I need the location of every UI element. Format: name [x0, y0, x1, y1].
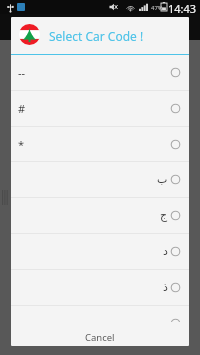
button[interactable]: د: [11, 234, 189, 269]
staticText: 14:43: [168, 1, 197, 15]
staticText: --: [18, 65, 26, 80]
staticText: Cancel: [85, 331, 115, 344]
staticText: د: [163, 245, 168, 258]
button[interactable]: ر: [11, 306, 189, 322]
button[interactable]: ذ: [11, 270, 189, 305]
button[interactable]: #: [11, 91, 189, 126]
staticText: ج: [160, 209, 168, 222]
staticText: 47%: [151, 4, 163, 12]
staticText: Select Car Code !: [49, 28, 144, 44]
button[interactable]: --: [11, 55, 189, 90]
staticText: ذ: [163, 281, 168, 294]
staticText: *: [18, 137, 25, 152]
staticText: #: [18, 101, 26, 116]
button[interactable]: ج: [11, 198, 189, 233]
button[interactable]: Cancel: [11, 322, 189, 346]
button[interactable]: *: [11, 127, 189, 162]
staticText: ب: [157, 173, 168, 186]
button[interactable]: ب: [11, 162, 189, 197]
